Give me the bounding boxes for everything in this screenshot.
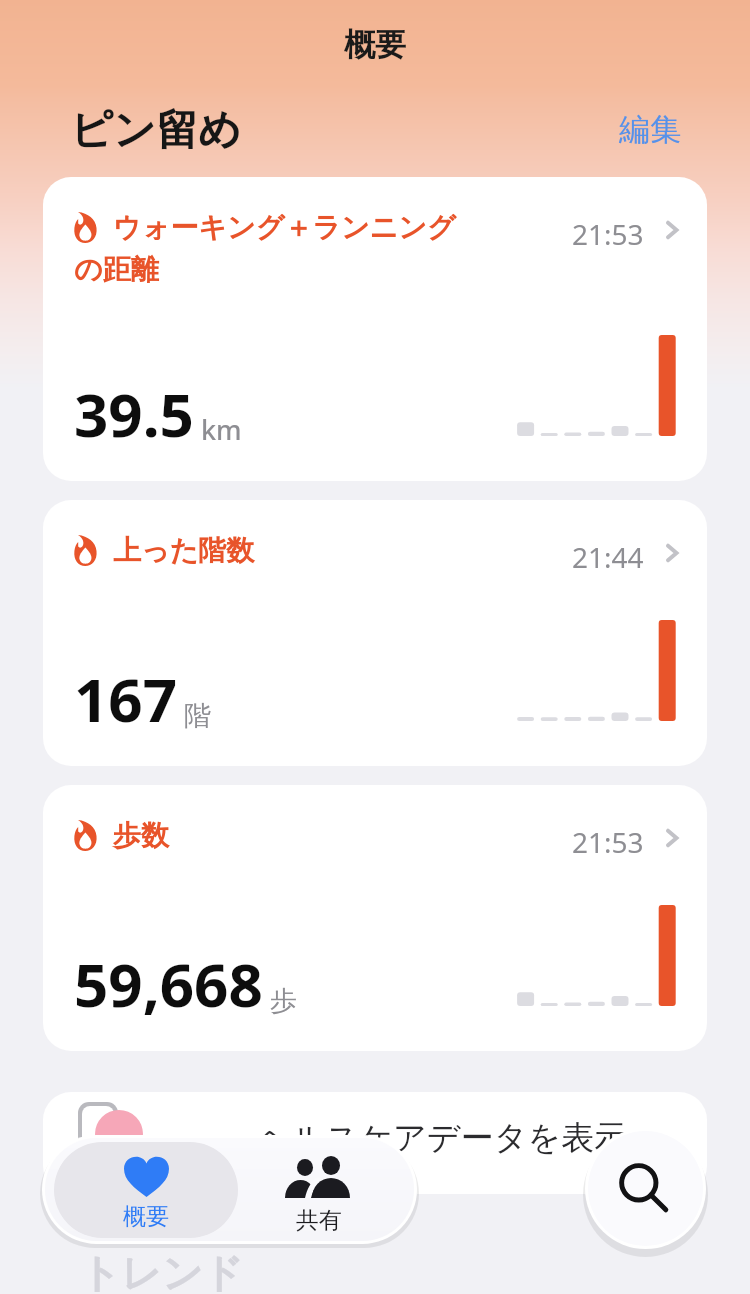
button[interactable]: 概要: [54, 1142, 238, 1238]
staticText: 共有: [296, 1206, 342, 1235]
button[interactable]: ■上った階数: [43, 500, 707, 766]
staticText: 39.5: [74, 373, 194, 455]
staticText: トレンド: [80, 1248, 244, 1294]
staticText: ■歩数: [74, 818, 572, 854]
button[interactable]: ■ウォーキング＋ランニング の距離: [43, 177, 707, 481]
button[interactable]: 編集: [619, 110, 681, 149]
staticText: ピン留め: [70, 104, 241, 157]
staticText: ■ウォーキング＋ランニング の距離: [74, 210, 572, 287]
staticText: ■上った階数: [74, 533, 572, 569]
staticText: ヘルスケアデータを表示: [258, 1117, 628, 1159]
staticText: 59,668: [74, 943, 263, 1025]
staticText: km: [201, 411, 242, 448]
staticText: 歩: [270, 984, 297, 1018]
staticText: 階: [184, 699, 211, 733]
staticText: 21:44: [572, 538, 644, 576]
staticText: 167: [74, 658, 177, 740]
staticText: 概要: [344, 25, 406, 64]
staticText: 編集: [619, 110, 681, 149]
staticText: 21:53: [572, 823, 644, 861]
button[interactable]: ■歩数: [43, 785, 707, 1051]
staticText: 概要: [123, 1202, 169, 1231]
button[interactable]: ヘルスケアデータを表示: [43, 1092, 707, 1194]
staticText: 21:53: [572, 215, 644, 253]
button[interactable]: 共有: [243, 1142, 393, 1238]
button[interactable]: Search: [588, 1131, 703, 1246]
